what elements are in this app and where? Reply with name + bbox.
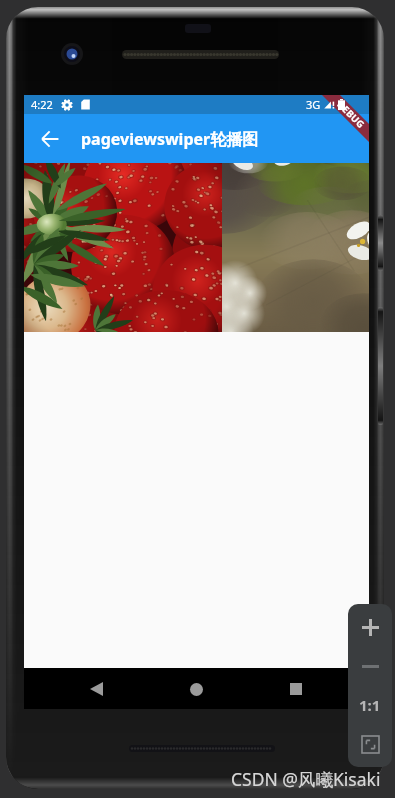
- button[interactable]: Zoom in: [352, 609, 388, 645]
- staticText: CSDN @风曦Kisaki: [231, 767, 381, 791]
- button[interactable]: Actual size: [352, 687, 388, 723]
- button[interactable]: Back: [30, 119, 70, 159]
- staticText: 1:1: [359, 695, 381, 715]
- staticText: 4:22: [31, 97, 53, 112]
- staticText: DEBUG: [334, 98, 368, 131]
- staticText: 3G: [306, 97, 321, 112]
- staticText: pageviewswiper轮播图: [81, 128, 259, 150]
- button[interactable]: Fit to window: [352, 726, 388, 762]
- button[interactable]: Zoom out: [352, 648, 388, 684]
- button[interactable]: Recent apps: [276, 669, 316, 709]
- button[interactable]: Back: [76, 669, 116, 709]
- button[interactable]: Home: [176, 669, 216, 709]
